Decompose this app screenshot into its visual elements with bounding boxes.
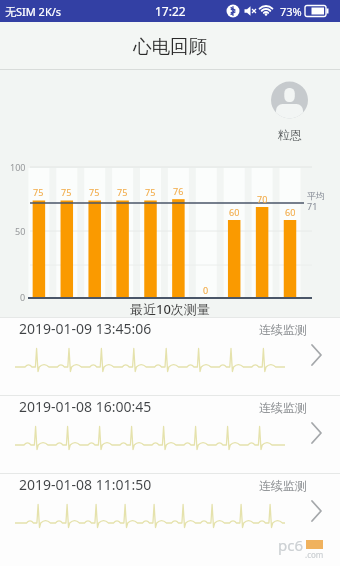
staticText: 0 (20, 291, 26, 303)
staticText: 100 (10, 161, 26, 173)
staticText: 连续监测 (259, 478, 307, 493)
staticText: 75 (33, 186, 44, 198)
staticText: 60 (285, 206, 296, 218)
staticText: 粒恩 (278, 127, 302, 142)
staticText: 70 (257, 193, 268, 205)
staticText: pc6 (278, 535, 304, 555)
staticText: 2019-01-08 11:01:50 (19, 475, 152, 494)
staticText: 50 (15, 225, 26, 237)
staticText: 连续监测 (259, 322, 307, 337)
staticText: 75 (89, 186, 100, 198)
staticText: 75 (61, 186, 72, 198)
staticText: 0 (203, 284, 209, 296)
staticText: 最近10次测量 (130, 300, 210, 318)
staticText: 76 (173, 185, 184, 197)
button[interactable]: 2019-01-08 16:00:45 (0, 395, 340, 473)
button[interactable]: 2019-01-09 13:45:06 (0, 317, 340, 395)
staticText: 60 (229, 206, 240, 218)
staticText: 平均 (307, 190, 325, 201)
staticText: 71 (307, 200, 318, 212)
staticText: .com (305, 549, 324, 560)
button[interactable]: 2019-01-08 11:01:50 (0, 473, 340, 551)
staticText: 无SIM 2K/s (5, 4, 62, 19)
staticText: 连续监测 (259, 400, 307, 415)
staticText: 2019-01-09 13:45:06 (19, 319, 152, 338)
staticText: 73% (280, 4, 302, 19)
staticText: 75 (117, 186, 128, 198)
button[interactable]: 粒恩 (270, 81, 309, 143)
staticText: 17:22 (155, 3, 186, 19)
staticText: 75 (145, 186, 156, 198)
staticText: 心电回顾 (133, 35, 207, 58)
staticText: 2019-01-08 16:00:45 (19, 397, 152, 416)
